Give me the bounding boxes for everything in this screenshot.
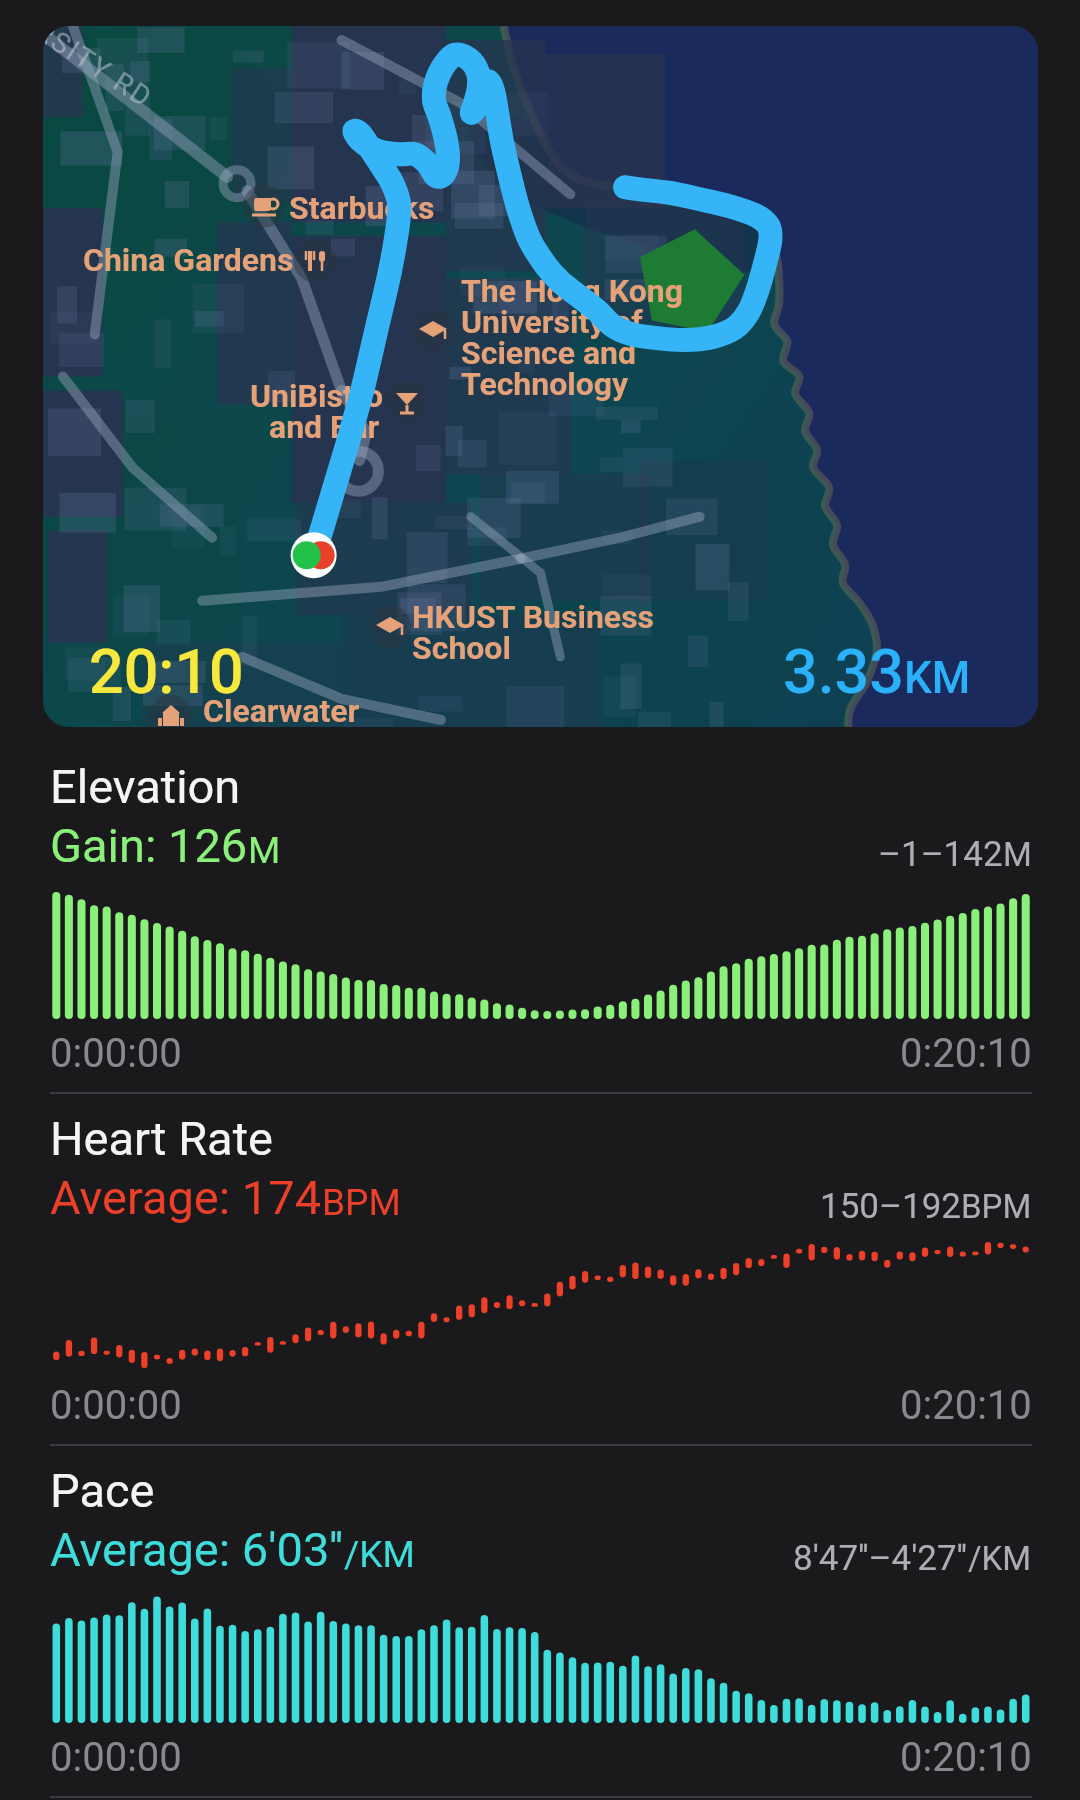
staticText: 8'47''–4'27'' (793, 1538, 968, 1579)
staticText: 150–192 (820, 1186, 961, 1227)
staticText: School (412, 629, 511, 667)
staticText: Starbucks (289, 189, 435, 227)
staticText: 0:20:10 (900, 1734, 1032, 1781)
staticText: Elevation (50, 759, 241, 814)
staticText: UniBistro (250, 377, 383, 415)
staticText: M (1003, 835, 1032, 874)
staticText: 0:20:10 (900, 1382, 1032, 1429)
staticText: Gain: 126 (50, 818, 248, 873)
staticText: and Bar (269, 408, 380, 446)
staticText: /KM (344, 1533, 415, 1576)
staticText: Heart Rate (50, 1111, 273, 1166)
staticText: BPM (322, 1181, 401, 1224)
staticText: 0:00:00 (50, 1030, 182, 1077)
staticText: 3.33 (783, 636, 904, 707)
staticText: 0:00:00 (50, 1382, 182, 1429)
staticText: 0:20:10 (900, 1030, 1032, 1077)
staticText: China Gardens (83, 241, 294, 279)
staticText: Science and (461, 334, 637, 372)
button[interactable]: Elevation (0, 740, 1080, 1092)
staticText: 20:10 (89, 636, 244, 707)
staticText: Clearwater (203, 692, 360, 727)
staticText: M (248, 829, 281, 872)
staticText: Pace (50, 1463, 155, 1518)
button[interactable]: Route map (43, 26, 1038, 727)
staticText: 0:00:00 (50, 1734, 182, 1781)
staticText: Average: 6'03'' (50, 1522, 344, 1577)
staticText: BPM (961, 1187, 1032, 1226)
staticText: RSITY RD (43, 26, 159, 115)
button[interactable]: Pace (0, 1444, 1080, 1796)
staticText: HKUST Business (412, 598, 655, 636)
staticText: University of (461, 303, 643, 341)
staticText: KM (904, 652, 971, 704)
staticText: The Hong Kong (461, 272, 684, 310)
button[interactable]: Heart Rate (0, 1092, 1080, 1444)
staticText: Technology (461, 365, 629, 403)
staticText: /KM (968, 1539, 1032, 1578)
staticText: Average: 174 (50, 1170, 322, 1225)
staticText: –1–142 (878, 834, 1003, 875)
